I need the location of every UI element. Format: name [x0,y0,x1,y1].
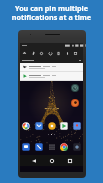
button[interactable] [20,72,83,80]
button[interactable]: Maps [73,122,81,130]
button[interactable]: Back [29,156,38,165]
button[interactable]: App [71,99,79,107]
button[interactable]: Gmail [35,122,43,130]
button[interactable]: Messages [22,143,30,151]
button[interactable]: Google [22,122,30,130]
button[interactable]: Quick setting [65,51,70,56]
button[interactable]: Phone [35,143,43,151]
button[interactable]: Quick setting [31,51,36,56]
button[interactable]: Photos [48,122,56,130]
button[interactable]: Quick setting [22,51,27,56]
button[interactable]: Chrome [60,143,68,151]
button[interactable] [20,63,83,71]
button[interactable]: Apps [48,143,56,151]
button[interactable]: Quick setting [56,51,61,56]
button[interactable]: Recents [65,156,74,165]
button[interactable]: Quick setting [73,51,78,56]
button[interactable]: Quick setting [48,51,53,56]
button[interactable]: Camera [73,143,81,151]
button[interactable]: Clock widget [71,84,79,92]
button[interactable]: Quick setting [39,51,44,56]
staticText: You can pin multiple notifications at a … [0,3,103,22]
button[interactable]: Home [47,156,56,165]
button[interactable]: Play [60,122,68,130]
